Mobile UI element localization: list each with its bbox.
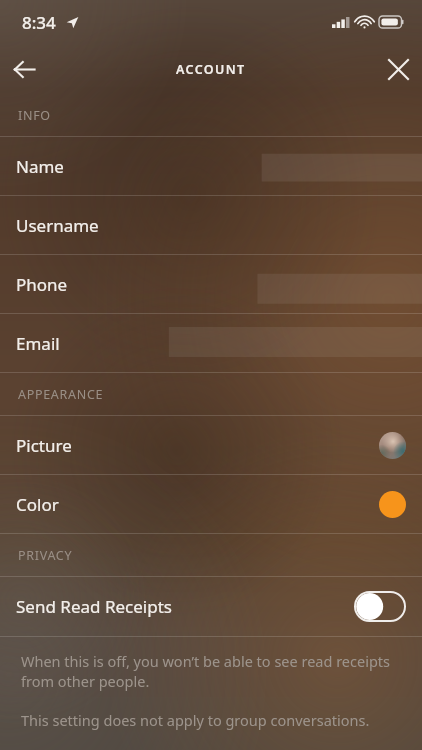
button[interactable]: Close: [374, 45, 422, 93]
button[interactable]: Send Read Receipts: [0, 577, 422, 636]
staticText: This setting does not apply to group con…: [21, 710, 398, 730]
staticText: Color: [16, 493, 59, 516]
staticText: INFO: [18, 107, 51, 124]
staticText: Name: [16, 155, 64, 178]
button[interactable]: Email: [0, 314, 422, 372]
button[interactable]: Picture: [0, 416, 422, 474]
staticText: Picture: [16, 434, 72, 457]
button[interactable]: Name: [0, 137, 422, 195]
staticText: ACCOUNT: [176, 61, 246, 78]
staticText: Phone: [16, 273, 68, 296]
staticText: When this is off, you won’t be able to s…: [21, 651, 398, 692]
button[interactable]: Phone: [0, 255, 422, 313]
staticText: Username: [16, 214, 99, 237]
button[interactable]: Send Read Receipts toggle, off: [354, 591, 406, 622]
staticText: Send Read Receipts: [16, 595, 172, 618]
button[interactable]: Back: [0, 45, 48, 93]
button[interactable]: Username: [0, 196, 422, 254]
button[interactable]: Color: [0, 475, 422, 533]
staticText: PRIVACY: [18, 547, 73, 564]
staticText: APPEARANCE: [18, 386, 104, 403]
staticText: Email: [16, 332, 60, 355]
staticText: 8:34: [22, 11, 56, 34]
